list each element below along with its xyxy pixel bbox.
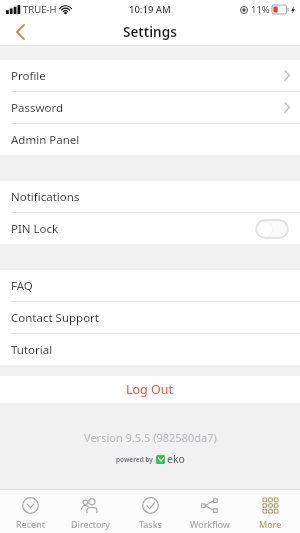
staticText: Contact Support bbox=[11, 310, 100, 326]
staticText: eko bbox=[167, 452, 185, 466]
staticText: PIN Lock bbox=[11, 221, 59, 237]
button[interactable]: FAQ bbox=[0, 270, 300, 301]
button[interactable]: Profile bbox=[0, 60, 300, 91]
button[interactable]: Admin Panel bbox=[0, 124, 300, 155]
button[interactable]: Notifications bbox=[0, 181, 300, 212]
button[interactable]: Password bbox=[0, 92, 300, 123]
staticText: 10:19 AM bbox=[129, 3, 171, 16]
staticText: Notifications bbox=[11, 189, 80, 205]
button[interactable]: PIN Lock toggle, off bbox=[255, 219, 289, 239]
staticText: Password bbox=[11, 100, 64, 116]
staticText: FAQ bbox=[11, 278, 33, 294]
staticText: Workflow bbox=[190, 518, 230, 530]
staticText: 11% bbox=[251, 3, 270, 16]
button[interactable]: Contact Support bbox=[0, 302, 300, 333]
button[interactable]: Directory bbox=[60, 490, 120, 533]
staticText: Directory bbox=[71, 518, 110, 530]
button[interactable]: Recent bbox=[0, 490, 60, 533]
button[interactable]: Tutorial bbox=[0, 334, 300, 365]
button[interactable]: Workflow bbox=[180, 490, 240, 533]
staticText: Tutorial bbox=[11, 342, 53, 358]
button[interactable]: Back bbox=[0, 18, 40, 46]
staticText: Log Out bbox=[126, 381, 174, 398]
button[interactable]: More bbox=[240, 490, 300, 533]
staticText: Tasks bbox=[139, 518, 162, 530]
button[interactable]: Tasks bbox=[120, 490, 180, 533]
staticText: TRUE-H bbox=[23, 3, 57, 16]
staticText: Settings bbox=[123, 23, 177, 41]
staticText: Version 9.5.5 (982580da7) bbox=[84, 430, 217, 445]
staticText: Profile bbox=[11, 68, 46, 84]
button[interactable]: Log Out bbox=[0, 376, 300, 403]
staticText: Recent bbox=[16, 518, 45, 530]
button[interactable]: PIN Lock bbox=[0, 213, 300, 244]
staticText: More bbox=[259, 518, 282, 530]
staticText: Admin Panel bbox=[11, 132, 80, 148]
staticText: powered by bbox=[116, 455, 153, 464]
